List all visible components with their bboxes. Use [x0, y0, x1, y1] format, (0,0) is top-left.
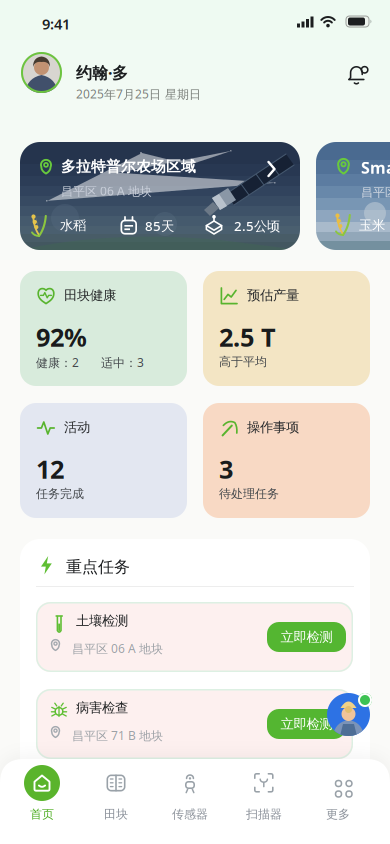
staticText: 玉米 [359, 217, 385, 233]
button[interactable]: 农场助手 [326, 692, 371, 737]
staticText: 首页 [30, 807, 54, 822]
staticText: 扫描器 [246, 807, 282, 822]
staticText: 待处理任务 [219, 486, 279, 501]
staticText: 适中：3 [101, 354, 144, 370]
button[interactable]: 病害检查 [36, 689, 353, 759]
staticText: 昌平区 06 A 地块 [72, 640, 163, 656]
button[interactable]: Smart农场区域 [316, 142, 390, 250]
staticText: 2.5公顷 [234, 217, 280, 235]
button[interactable]: 土壤检测 [36, 602, 353, 672]
button[interactable]: 通知 [348, 65, 370, 89]
staticText: 昌平区 71 B 地块 [361, 184, 390, 200]
staticText: 多拉特普尔农场区域 [61, 157, 196, 175]
staticText: 重点任务 [66, 557, 130, 577]
staticText: 92% [36, 320, 87, 354]
button[interactable]: 田块 [79, 759, 153, 839]
button[interactable]: 传感器 [153, 759, 227, 839]
staticText: 田块 [104, 807, 128, 822]
staticText: 水稻 [60, 217, 86, 233]
staticText: 预估产量 [247, 287, 299, 303]
staticText: 活动 [64, 419, 90, 435]
staticText: 2.5 T [219, 320, 276, 354]
staticText: 更多 [326, 807, 350, 822]
staticText: 立即检测 [280, 716, 332, 732]
button[interactable]: 扫描器 [227, 759, 301, 839]
staticText: 昌平区 71 B 地块 [72, 727, 163, 743]
staticText: 病害检查 [76, 699, 128, 716]
staticText: 9:41 [42, 14, 70, 33]
staticText: Smart绿源农场区域 [361, 157, 390, 178]
staticText: 任务完成 [36, 486, 84, 501]
staticText: 85天 [145, 217, 174, 235]
staticText: 操作事项 [247, 419, 299, 435]
staticText: 约翰·多 [76, 62, 128, 83]
staticText: 田块健康 [64, 287, 116, 303]
staticText: 昌平区 06 A 地块 [61, 183, 152, 199]
button[interactable]: 多拉特普尔农场区域 [20, 142, 300, 250]
button[interactable]: 首页 [5, 759, 79, 839]
staticText: 2025年7月25日 星期日 [76, 86, 201, 102]
staticText: 立即检测 [280, 629, 332, 645]
button[interactable]: 立即检测 [267, 622, 346, 652]
staticText: 健康：2 [36, 354, 79, 370]
staticText: 3 [219, 452, 233, 486]
button[interactable]: 立即检测 [267, 709, 346, 739]
staticText: 土壤检测 [76, 612, 128, 629]
staticText: 传感器 [172, 807, 208, 822]
staticText: 12 [36, 452, 64, 486]
button[interactable]: 更多 [301, 759, 375, 839]
staticText: 高于平均 [219, 354, 267, 369]
